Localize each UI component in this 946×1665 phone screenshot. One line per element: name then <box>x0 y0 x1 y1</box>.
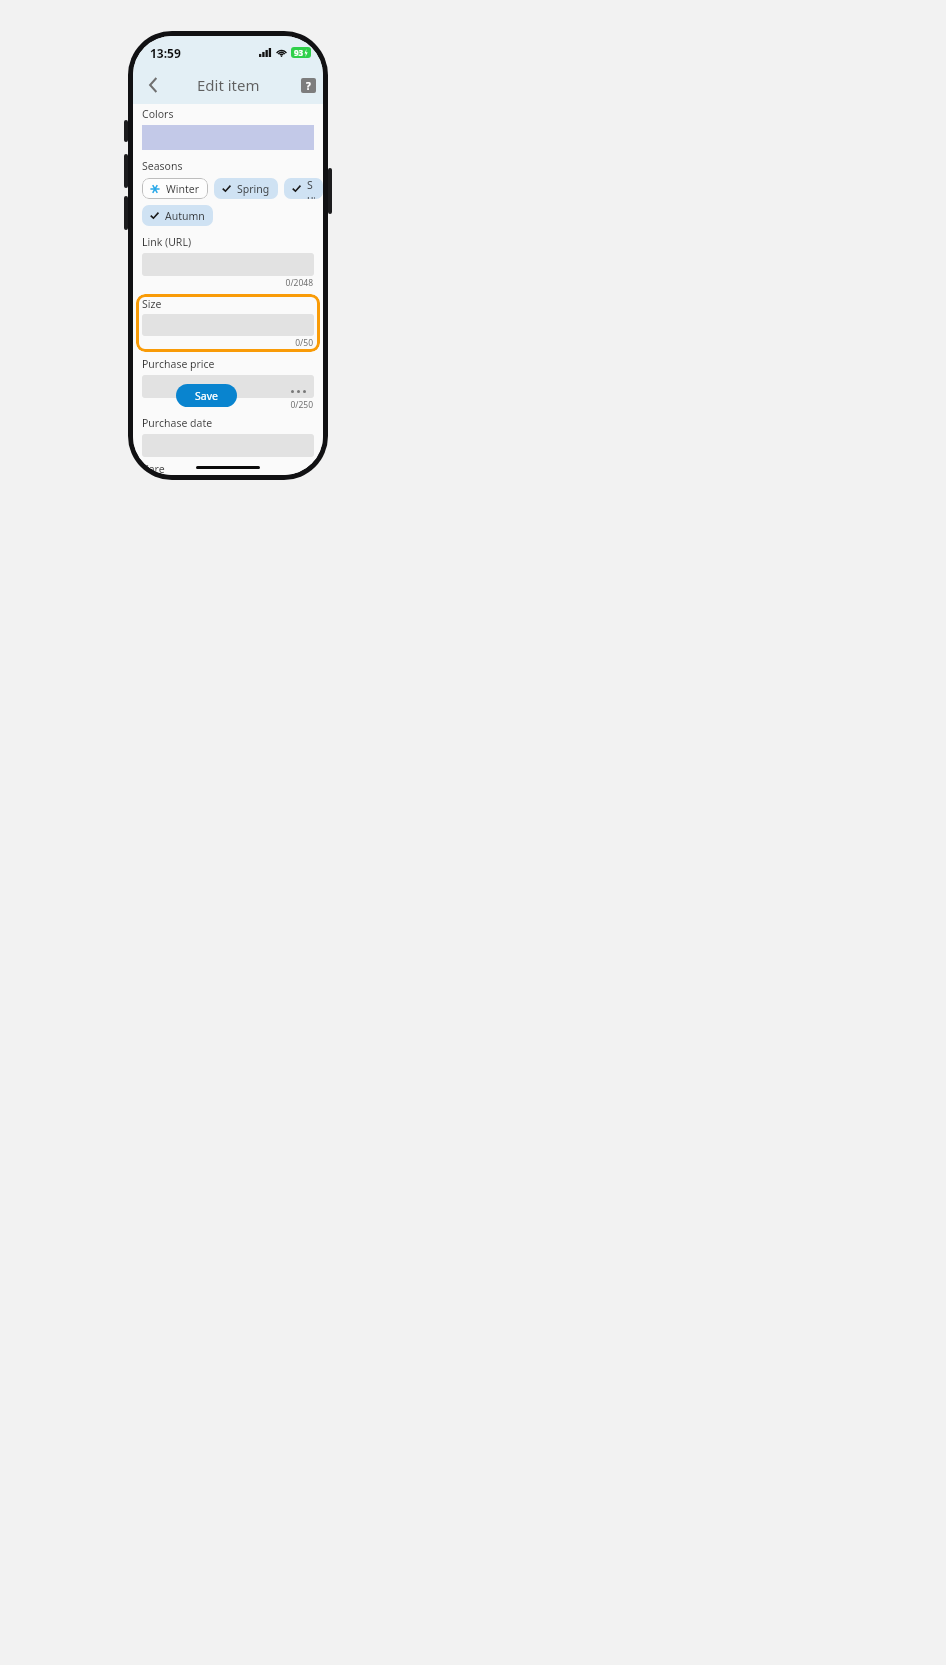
staticText: Seasons <box>142 159 183 173</box>
staticText: Care <box>142 462 165 475</box>
button[interactable]: Save <box>176 384 237 407</box>
button[interactable]: Autumn <box>142 205 213 226</box>
button[interactable]: Summer <box>284 178 323 199</box>
staticText: 0/50 <box>136 337 313 349</box>
staticText: Size <box>142 297 162 311</box>
staticText: 0/250 <box>133 399 313 411</box>
staticText: 93 <box>294 47 304 58</box>
staticText: Spring <box>237 182 270 196</box>
button[interactable] <box>142 375 314 398</box>
staticText: Winter <box>166 182 200 196</box>
staticText: 13:59 <box>150 45 181 61</box>
staticText: Purchase date <box>142 416 213 430</box>
staticText: Edit item <box>197 75 260 95</box>
button[interactable]: Help <box>301 78 316 93</box>
button[interactable]: Back <box>138 70 168 100</box>
staticText: Autumn <box>165 209 205 223</box>
staticText: ? <box>306 79 311 93</box>
staticText: Link (URL) <box>142 235 192 249</box>
button[interactable]: Spring <box>214 178 278 199</box>
staticText: Colors <box>142 107 174 121</box>
staticText: Save <box>195 389 218 403</box>
staticText: 0/2048 <box>133 277 313 289</box>
staticText: Purchase price <box>142 357 215 371</box>
button[interactable]: Winter <box>142 178 208 199</box>
staticText: Summer <box>307 178 315 199</box>
